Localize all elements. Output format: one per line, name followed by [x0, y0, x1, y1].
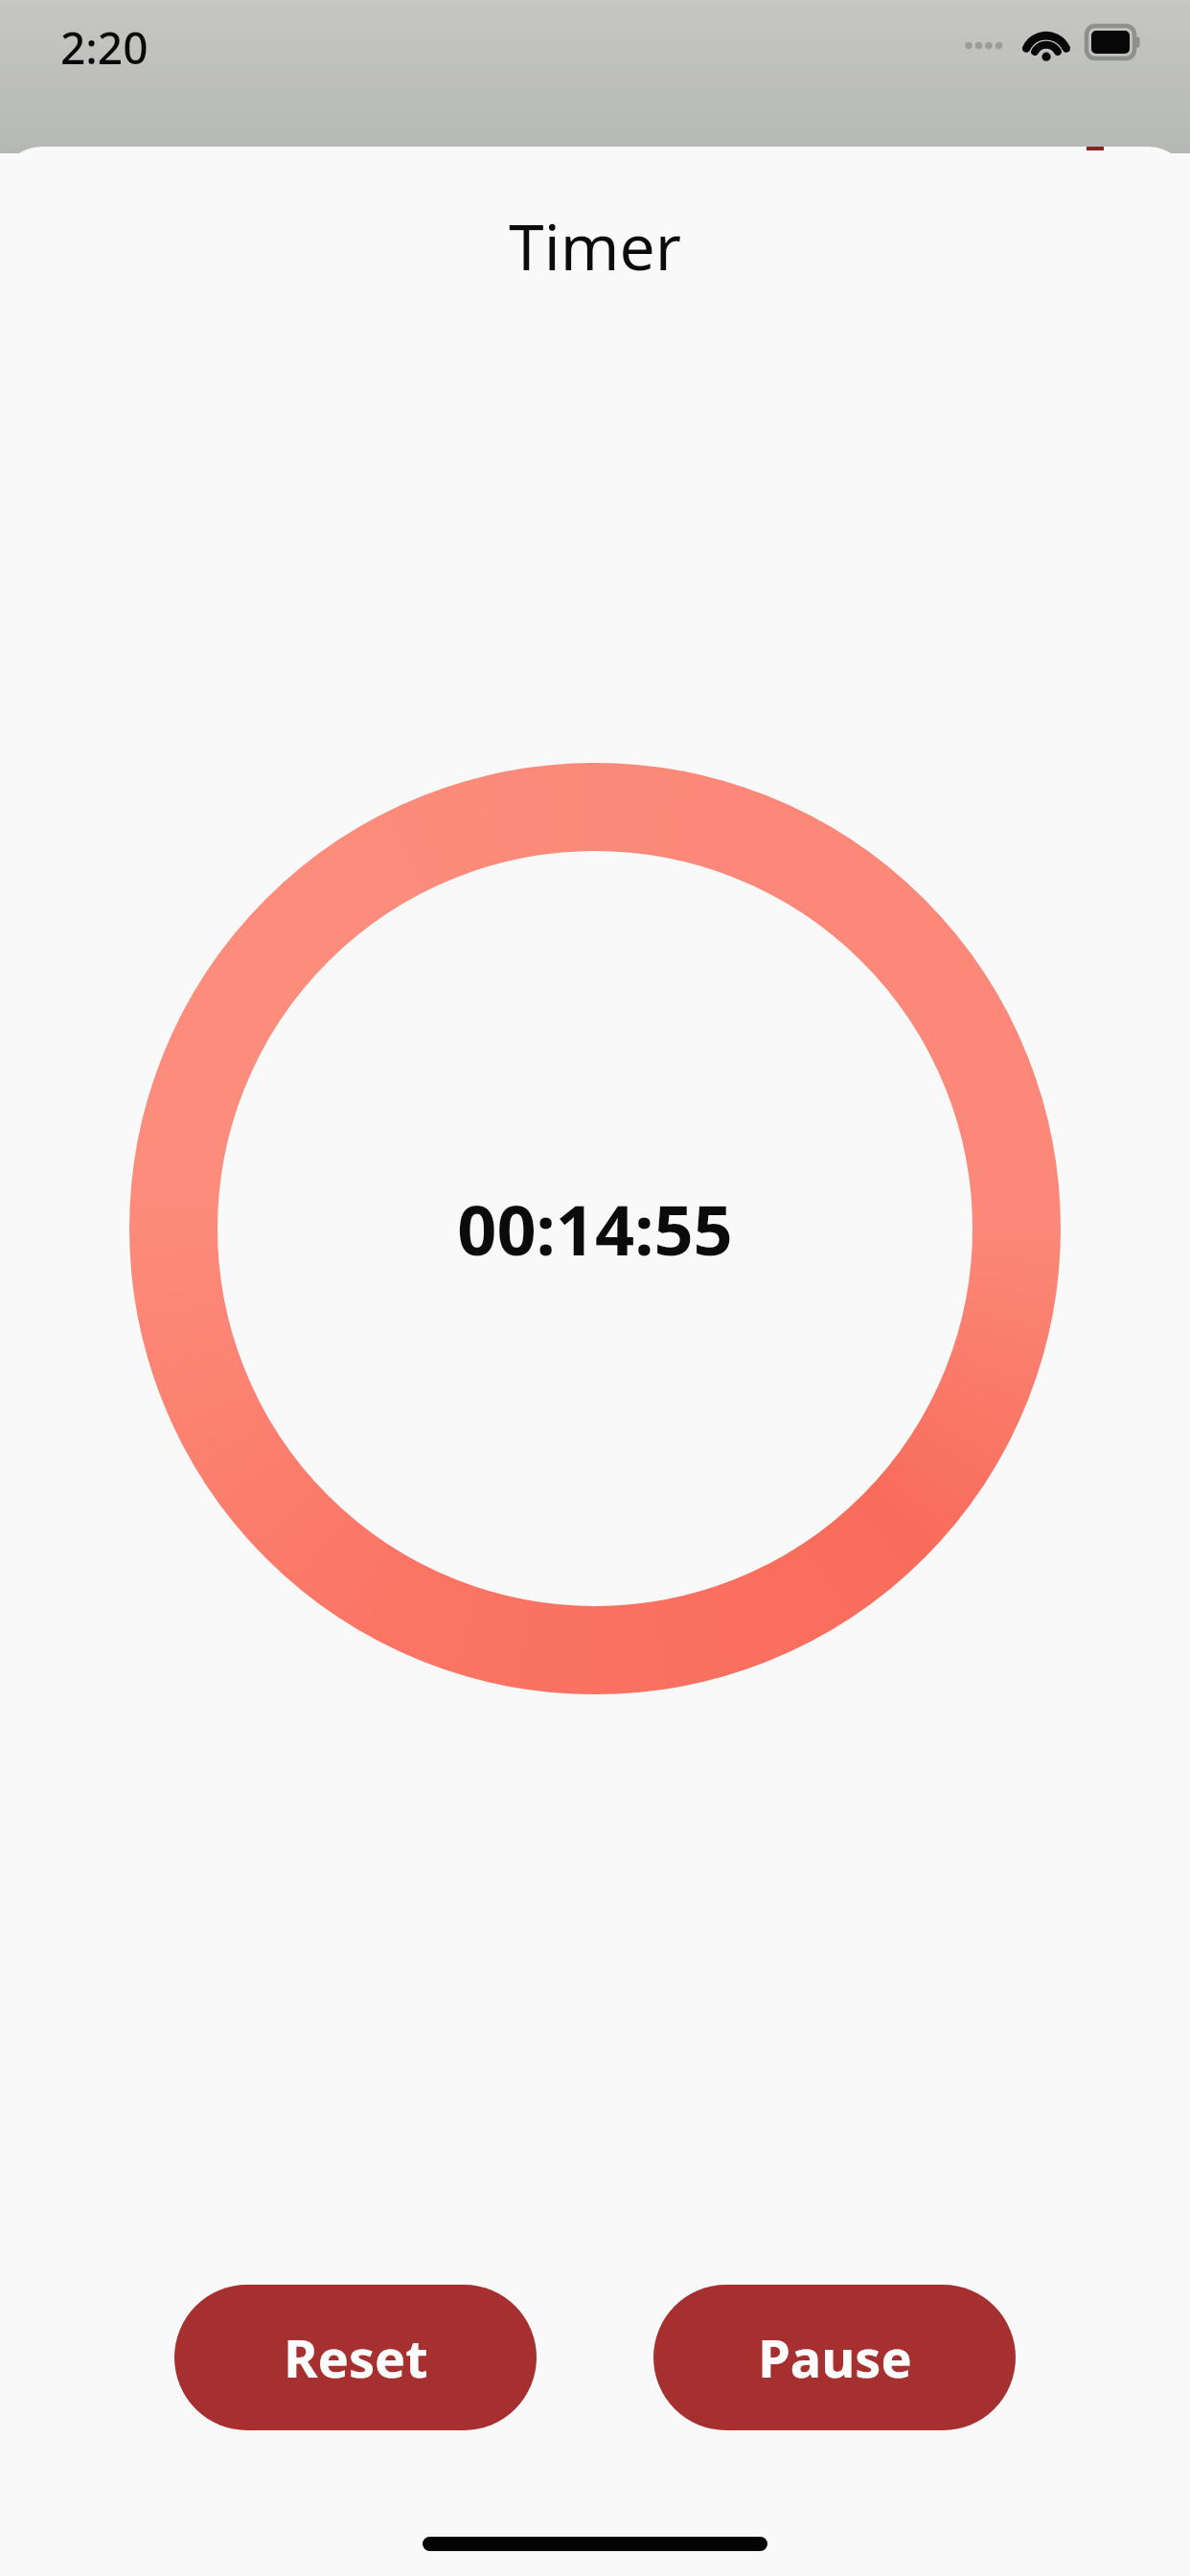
- staticText: Timer: [509, 202, 681, 288]
- staticText: Reset: [284, 2322, 428, 2393]
- staticText: 2:20: [60, 17, 149, 78]
- button[interactable]: Pause: [653, 2285, 1016, 2430]
- button[interactable]: Reset: [174, 2285, 537, 2430]
- staticText: Pause: [758, 2322, 912, 2393]
- staticText: 00:14:55: [457, 1182, 733, 1276]
